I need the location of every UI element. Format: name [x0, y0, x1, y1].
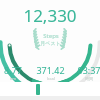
- staticText: kcal: [47, 76, 55, 81]
- button[interactable]: Page indicator: [36, 84, 40, 95]
- staticText: km: [10, 76, 16, 81]
- staticText: 8.77: [4, 64, 22, 76]
- button[interactable]: Monthly best steps badge: [30, 28, 70, 49]
- staticText: 月ベスト: [40, 40, 61, 46]
- button[interactable]: 371.42: [34, 64, 67, 81]
- staticText: 12,330: [23, 4, 77, 27]
- button[interactable]: 03:37: [72, 64, 100, 81]
- staticText: 時間: [85, 76, 93, 81]
- staticText: Steps: [43, 32, 59, 40]
- staticText: 03:37: [77, 64, 100, 76]
- staticText: 371.42: [36, 64, 65, 76]
- button[interactable]: 8.77: [0, 64, 30, 81]
